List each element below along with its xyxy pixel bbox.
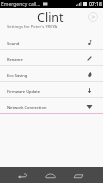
staticText: Emergency call... xyxy=(1,1,41,8)
button[interactable]: Send xyxy=(87,11,98,22)
staticText: Sound xyxy=(7,41,20,46)
button[interactable]: Eco Saving xyxy=(0,66,103,82)
button[interactable]: Recents xyxy=(64,167,92,183)
staticText: Eco Saving xyxy=(7,73,28,78)
staticText: Rename xyxy=(7,57,23,62)
staticText: Settings for Peter's FREYA xyxy=(7,24,58,30)
button[interactable]: Rename xyxy=(0,50,103,66)
staticText: 07:18 xyxy=(89,1,102,8)
staticText: Firmware Update xyxy=(7,89,41,94)
button[interactable]: Network Connection xyxy=(0,98,103,114)
staticText: Network Connection xyxy=(7,105,47,110)
button[interactable]: Firmware Update xyxy=(0,82,103,98)
button[interactable]: Sound xyxy=(0,34,103,50)
staticText: Clint xyxy=(37,9,64,26)
button[interactable]: Back xyxy=(8,167,36,183)
button[interactable]: Home xyxy=(36,167,64,183)
